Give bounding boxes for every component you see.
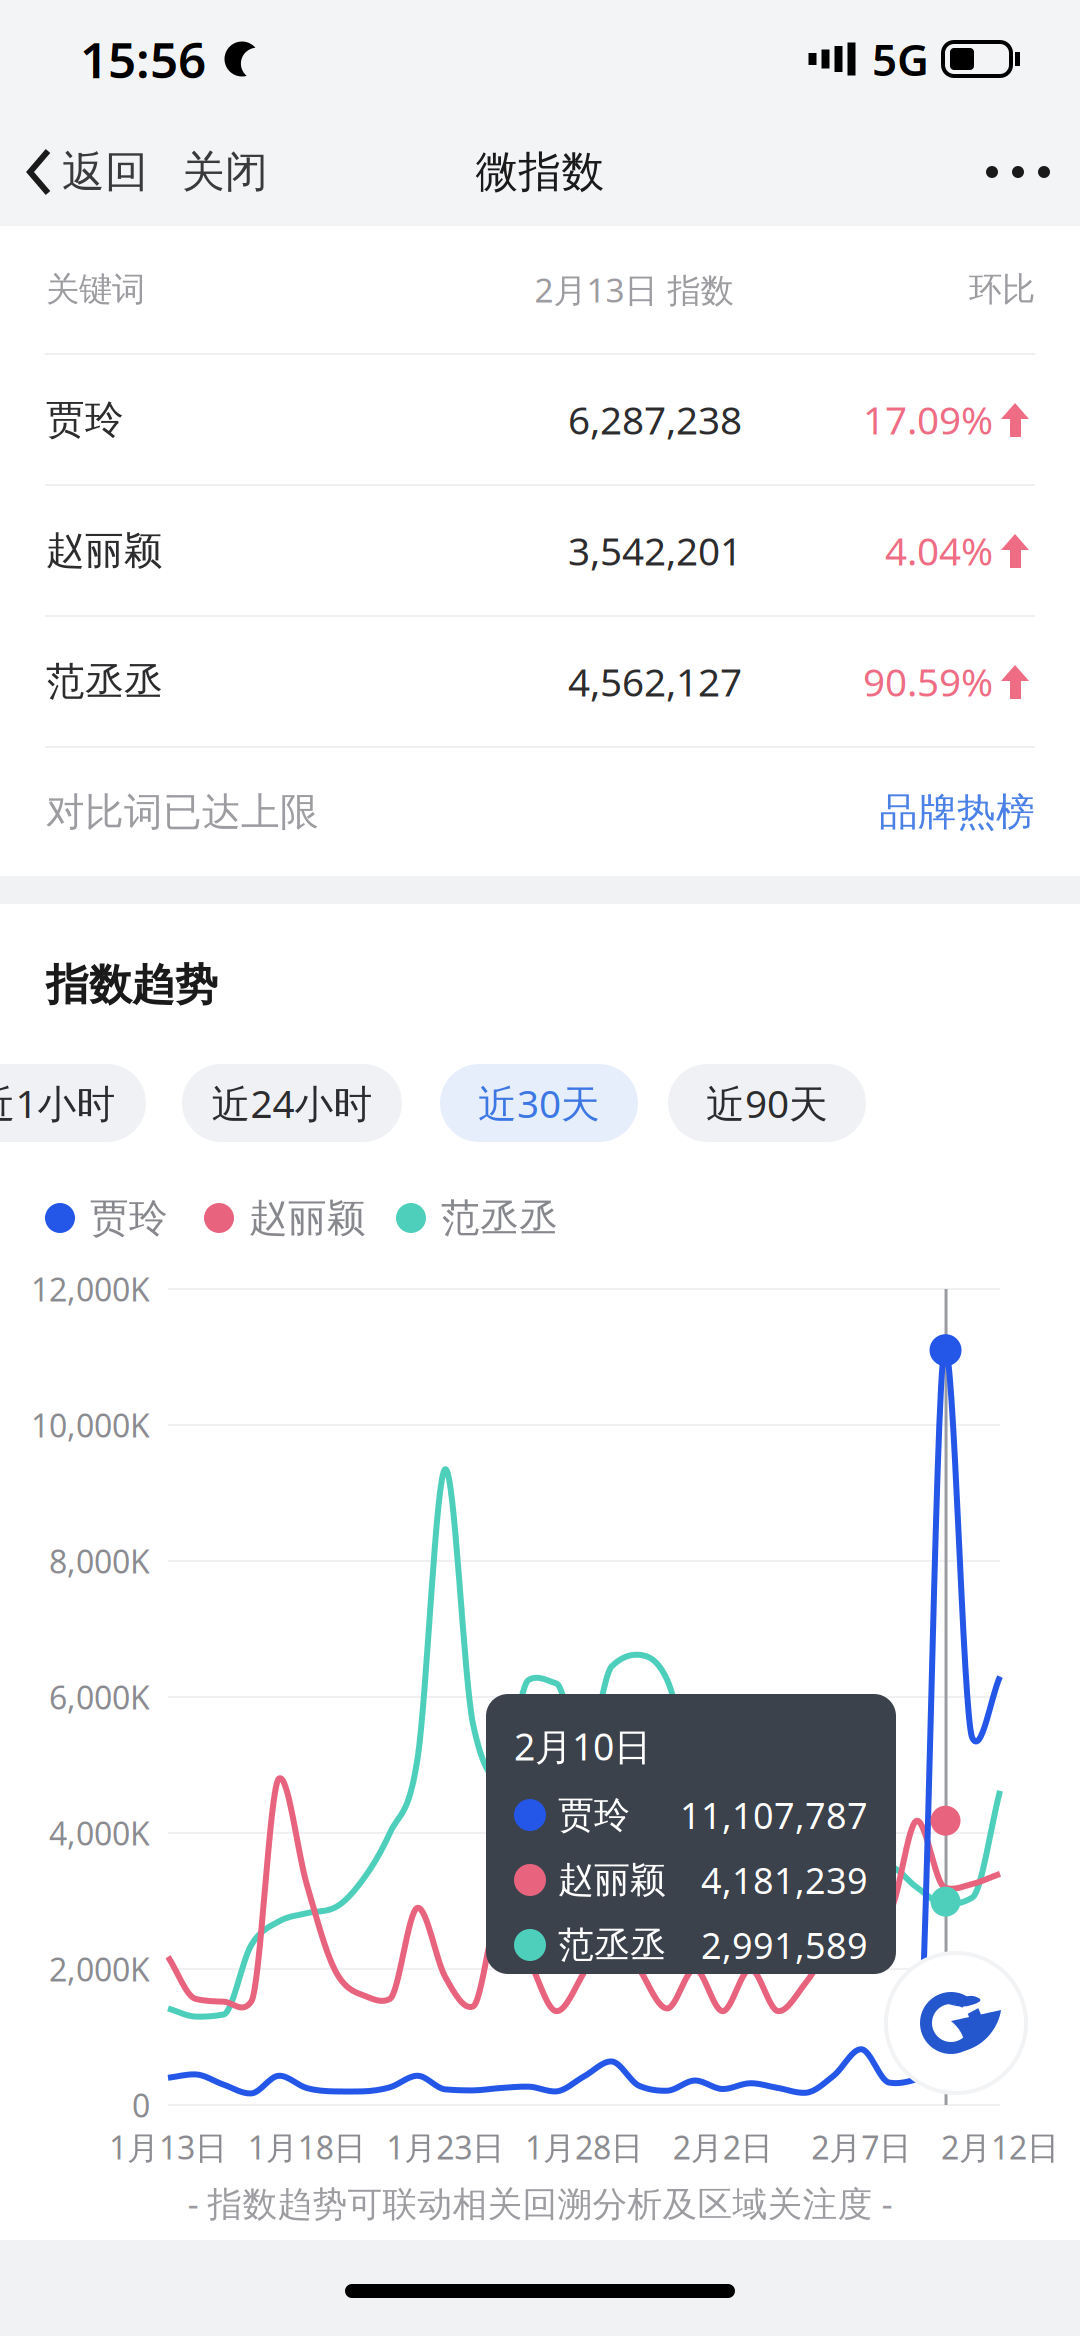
staticText: 对比词已达上限 bbox=[46, 788, 319, 836]
staticText: 品牌热榜 bbox=[879, 788, 1035, 836]
staticText: 1月23日 bbox=[386, 2126, 504, 2168]
button[interactable]: 贾玲 bbox=[42, 1182, 177, 1254]
staticText: 近30天 bbox=[478, 1077, 600, 1129]
staticText: 2月7日 bbox=[811, 2126, 911, 2168]
staticText: - 指数趋势可联动相关回溯分析及区域关注度 - bbox=[187, 2180, 892, 2226]
button[interactable]: 赵丽颖 bbox=[201, 1182, 373, 1254]
button[interactable]: 近90天 bbox=[668, 1064, 866, 1142]
staticText: 1月28日 bbox=[525, 2126, 643, 2168]
staticText: 90.59% bbox=[863, 656, 993, 707]
staticText: 15:56 bbox=[80, 26, 206, 92]
staticText: 范丞丞 bbox=[441, 1194, 558, 1242]
staticText: 2,991,589 bbox=[701, 1921, 868, 1969]
button[interactable]: 关闭 bbox=[162, 118, 288, 226]
staticText: 17.09% bbox=[863, 394, 993, 445]
button[interactable]: 赵丽颖 bbox=[0, 486, 1080, 617]
staticText: 近24小时 bbox=[211, 1077, 372, 1129]
staticText: 赵丽颖 bbox=[249, 1194, 366, 1242]
staticText: 指数趋势 bbox=[46, 959, 218, 1011]
button[interactable]: Weibo bbox=[884, 1951, 1028, 2095]
staticText: 1月13日 bbox=[109, 2126, 227, 2168]
staticText: 范丞丞 bbox=[558, 1923, 666, 1967]
staticText: 贾玲 bbox=[558, 1793, 630, 1837]
button[interactable]: 范丞丞 bbox=[393, 1182, 565, 1254]
staticText: 4,181,239 bbox=[701, 1856, 868, 1904]
staticText: 4.04% bbox=[885, 525, 993, 576]
staticText: 2月2日 bbox=[673, 2126, 773, 2168]
staticText: 微指数 bbox=[475, 146, 604, 198]
staticText: 10,000K bbox=[31, 1404, 150, 1446]
staticText: 4,562,127 bbox=[568, 656, 742, 707]
button[interactable]: 范丞丞 bbox=[0, 617, 1080, 748]
staticText: 2,000K bbox=[49, 1948, 150, 1990]
staticText: 6,000K bbox=[49, 1676, 150, 1718]
staticText: 贾玲 bbox=[90, 1194, 168, 1242]
button[interactable]: 返回 bbox=[0, 118, 162, 226]
staticText: 环比 bbox=[969, 269, 1035, 310]
staticText: 返回 bbox=[62, 146, 148, 198]
staticText: 赵丽颖 bbox=[46, 527, 163, 574]
staticText: 2月13日 指数 bbox=[534, 267, 733, 312]
staticText: 3,542,201 bbox=[568, 525, 742, 576]
button[interactable]: 近1小时 bbox=[0, 1064, 146, 1142]
button[interactable]: 近30天 bbox=[440, 1064, 638, 1142]
button[interactable]: More bbox=[956, 118, 1080, 226]
staticText: 12,000K bbox=[31, 1268, 150, 1310]
staticText: 赵丽颖 bbox=[558, 1858, 666, 1902]
button[interactable]: 贾玲 bbox=[0, 355, 1080, 486]
staticText: 近1小时 bbox=[0, 1077, 115, 1129]
staticText: 关键词 bbox=[46, 269, 145, 310]
staticText: 1月18日 bbox=[248, 2126, 366, 2168]
staticText: 关闭 bbox=[182, 146, 268, 198]
staticText: 5G bbox=[872, 30, 929, 88]
staticText: 11,107,787 bbox=[680, 1791, 868, 1839]
staticText: 近90天 bbox=[706, 1077, 828, 1129]
staticText: 0 bbox=[132, 2084, 150, 2126]
staticText: 4,000K bbox=[49, 1812, 150, 1854]
button[interactable]: 品牌热榜 bbox=[735, 748, 1035, 876]
staticText: 2月12日 bbox=[941, 2126, 1059, 2168]
staticText: 2月10日 bbox=[514, 1721, 651, 1771]
staticText: 6,287,238 bbox=[568, 394, 742, 445]
staticText: 贾玲 bbox=[46, 396, 124, 443]
button[interactable]: 近24小时 bbox=[182, 1064, 402, 1142]
staticText: 8,000K bbox=[49, 1540, 150, 1582]
staticText: 范丞丞 bbox=[46, 658, 163, 705]
